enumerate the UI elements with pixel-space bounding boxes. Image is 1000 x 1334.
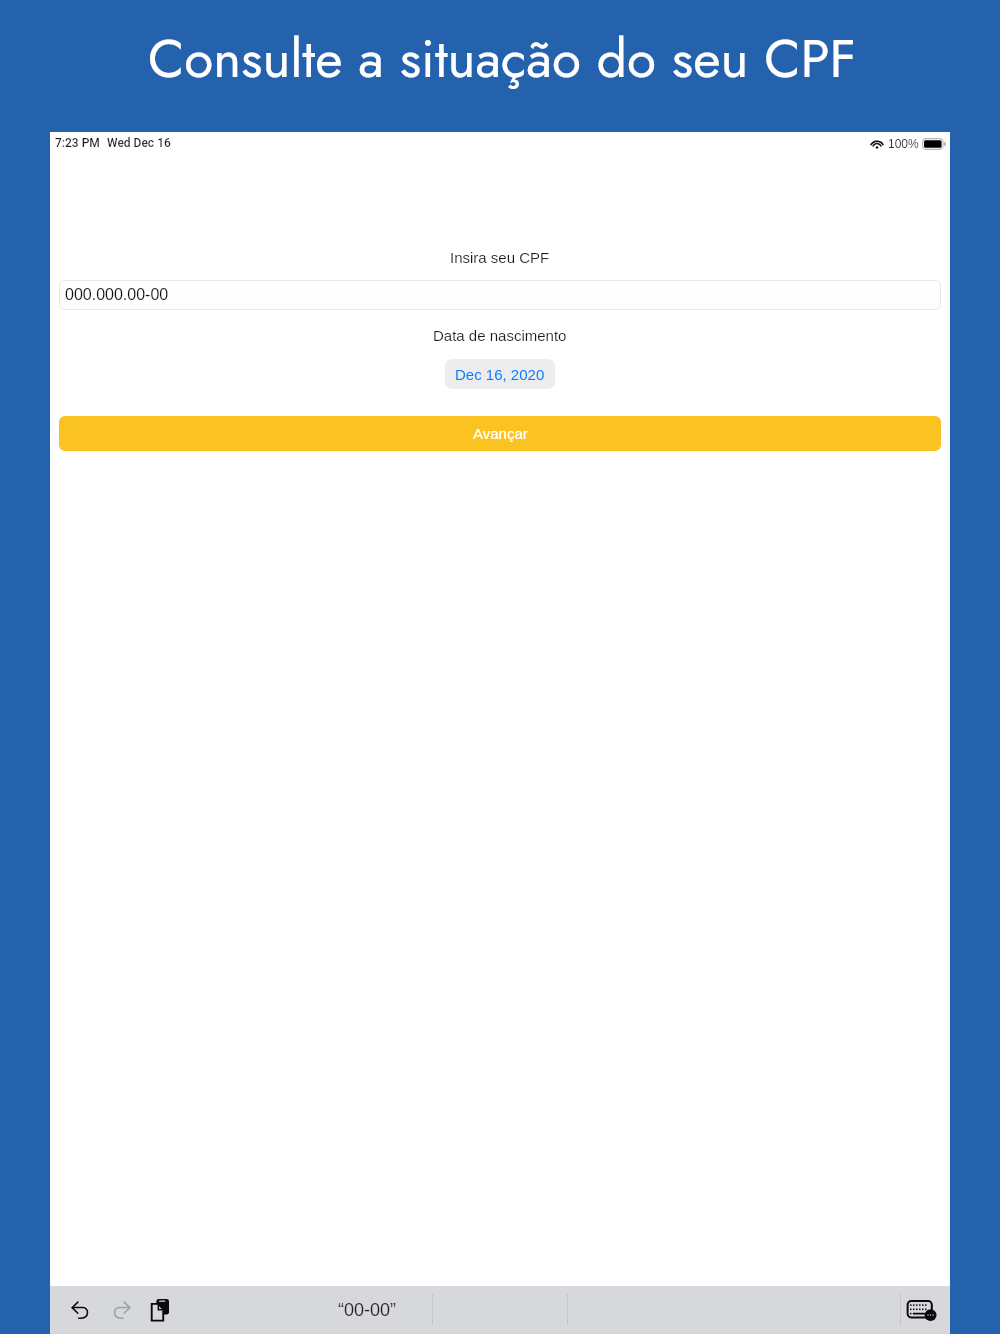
staticText: Data de nascimento [433, 327, 567, 344]
staticText: Wed Dec 16 [107, 136, 171, 150]
staticText: 100% [888, 137, 919, 150]
staticText: Avançar [473, 425, 528, 442]
button[interactable]: Redo [99, 1288, 143, 1332]
staticText: Insira seu CPF [450, 249, 550, 266]
button[interactable]: Dec 16, 2020 [445, 359, 555, 389]
staticText: Dec 16, 2020 [455, 366, 545, 383]
button[interactable]: Undo [58, 1288, 102, 1332]
staticText: 7:23 PM [55, 136, 100, 150]
button[interactable]: 000.000.00-00 [59, 280, 941, 310]
staticText: 000.000.00-00 [65, 286, 169, 304]
button[interactable]: Hide keyboard [899, 1287, 945, 1333]
staticText: Consulte a situação do seu CPF [148, 20, 857, 97]
button[interactable]: Paste [138, 1288, 182, 1332]
staticText: “00-00” [338, 1300, 397, 1320]
button[interactable]: Avançar [59, 416, 941, 451]
